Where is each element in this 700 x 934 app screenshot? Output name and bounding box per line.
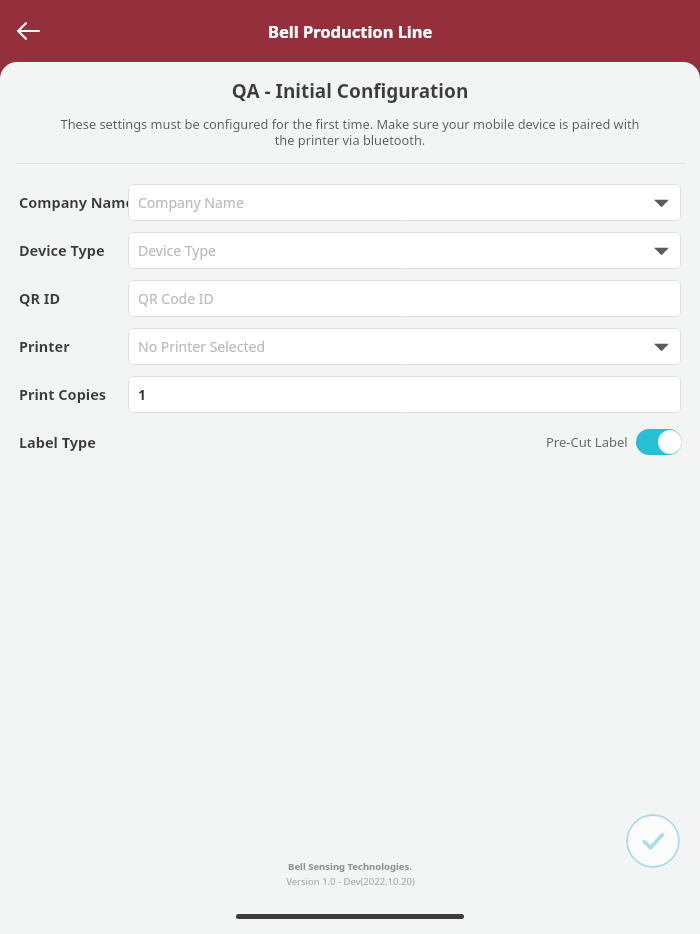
staticText: Company Name xyxy=(138,193,654,212)
staticText: QR ID xyxy=(19,288,61,308)
staticText: QR Code ID xyxy=(138,289,671,308)
button[interactable]: Confirm configuration xyxy=(626,814,680,868)
button[interactable]: QR Code ID xyxy=(128,280,681,317)
staticText: Device Type xyxy=(19,240,105,260)
staticText: Printer xyxy=(19,336,70,356)
staticText: 1 xyxy=(138,385,671,404)
button[interactable]: No Printer Selected xyxy=(128,328,681,365)
staticText: QA - Initial Configuration xyxy=(0,78,700,104)
staticText: Pre-Cut Label xyxy=(546,433,628,451)
staticText: Bell Sensing Technologies. xyxy=(288,860,412,873)
staticText: Company Name xyxy=(19,192,135,212)
staticText: Bell Production Line xyxy=(268,20,433,42)
staticText: Version 1.0 - Dev(2022.10.20) xyxy=(286,875,415,888)
staticText: Device Type xyxy=(138,241,654,260)
staticText: These settings must be configured for th… xyxy=(60,115,640,149)
staticText: No Printer Selected xyxy=(138,337,654,356)
button[interactable]: Device Type xyxy=(128,232,681,269)
button[interactable]: Pre-Cut Label toggle xyxy=(636,428,682,456)
button[interactable]: Back xyxy=(4,7,52,55)
button[interactable]: Company Name xyxy=(128,184,681,221)
button[interactable]: 1 xyxy=(128,376,681,413)
staticText: Label Type xyxy=(19,432,96,452)
staticText: Print Copies xyxy=(19,384,107,404)
